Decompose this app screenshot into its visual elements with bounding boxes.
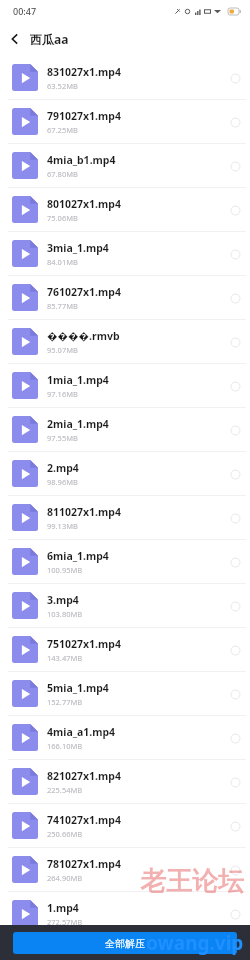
button[interactable]: 3.mp4 [0,584,250,627]
staticText: owang.vip [146,930,244,956]
staticText: 85.77MB [47,301,78,311]
staticText: 801027x1.mp4 [47,197,121,211]
staticText: 老王论坛 [140,865,244,898]
staticText: 103.80MB [47,609,83,619]
staticText: 97.55MB [47,433,78,443]
staticText: 2.mp4 [47,461,79,475]
button[interactable]: Select file [222,417,248,443]
button[interactable]: 781027x1.mp4 [0,848,250,891]
button[interactable]: Select file [222,769,248,795]
button[interactable]: 821027x1.mp4 [0,760,250,803]
staticText: 250.66MB [47,829,83,839]
button[interactable]: ����.rmvb [0,320,250,363]
staticText: 166.10MB [47,741,83,751]
staticText: 5mia_1.mp4 [47,681,109,695]
staticText: 西瓜aa [30,31,69,47]
button[interactable]: Back [0,22,30,56]
button[interactable]: Select file [222,637,248,663]
button[interactable]: 全部解压 [13,932,237,954]
button[interactable]: Select file [222,241,248,267]
button[interactable]: Select file [222,593,248,619]
button[interactable]: 6mia_1.mp4 [0,540,250,583]
staticText: 761027x1.mp4 [47,285,121,299]
staticText: 1.mp4 [47,901,79,915]
button[interactable]: Select file [222,109,248,135]
button[interactable]: 1mia_1.mp4 [0,364,250,407]
staticText: 75.06MB [47,213,78,223]
staticText: 6mia_1.mp4 [47,549,109,563]
button[interactable]: Select file [222,725,248,751]
button[interactable]: 4mia_b1.mp4 [0,144,250,187]
staticText: 3mia_1.mp4 [47,241,109,255]
staticText: 84.01MB [47,257,78,267]
staticText: 67.80MB [47,169,78,179]
staticText: 98.96MB [47,477,78,487]
button[interactable]: 761027x1.mp4 [0,276,250,319]
staticText: 00:47 [13,5,37,17]
button[interactable]: Select file [222,65,248,91]
button[interactable]: 4mia_a1.mp4 [0,716,250,759]
staticText: 97.16MB [47,389,78,399]
staticText: 143.47MB [47,653,83,663]
staticText: 2mia_1.mp4 [47,417,109,431]
staticText: 264.90MB [47,873,83,883]
button[interactable]: 2mia_1.mp4 [0,408,250,451]
staticText: 272.57MB [47,917,83,927]
staticText: 全部解压 [105,937,145,950]
button[interactable]: Select file [222,285,248,311]
staticText: 831027x1.mp4 [47,65,121,79]
button[interactable]: Select file [222,901,248,927]
staticText: 63.52MB [47,81,78,91]
button[interactable]: 791027x1.mp4 [0,100,250,143]
staticText: 781027x1.mp4 [47,857,121,871]
staticText: 152.77MB [47,697,83,707]
button[interactable]: 2.mp4 [0,452,250,495]
staticText: 741027x1.mp4 [47,813,121,827]
button[interactable]: 1.mp4 [0,892,250,935]
button[interactable]: 3mia_1.mp4 [0,232,250,275]
staticText: 95.07MB [47,345,78,355]
staticText: 3.mp4 [47,593,79,607]
button[interactable]: Select file [222,373,248,399]
staticText: 1mia_1.mp4 [47,373,109,387]
staticText: 225.54MB [47,785,83,795]
button[interactable]: Select file [222,857,248,883]
button[interactable]: 801027x1.mp4 [0,188,250,231]
staticText: 751027x1.mp4 [47,637,121,651]
staticText: 811027x1.mp4 [47,505,121,519]
button[interactable]: 741027x1.mp4 [0,804,250,847]
staticText: 100.95MB [47,565,83,575]
staticText: 4mia_b1.mp4 [47,153,116,167]
button[interactable]: Select file [222,197,248,223]
button[interactable]: Select file [222,681,248,707]
button[interactable]: Select file [222,153,248,179]
button[interactable]: Select file [222,813,248,839]
button[interactable]: 5mia_1.mp4 [0,672,250,715]
staticText: 67.25MB [47,125,78,135]
button[interactable]: Select file [222,461,248,487]
button[interactable]: 751027x1.mp4 [0,628,250,671]
staticText: ����.rmvb [47,329,120,343]
staticText: 821027x1.mp4 [47,769,121,783]
button[interactable]: Select file [222,329,248,355]
button[interactable]: 831027x1.mp4 [0,56,250,99]
button[interactable]: Select file [222,549,248,575]
staticText: 99.13MB [47,521,78,531]
button[interactable]: Select file [222,505,248,531]
button[interactable]: 811027x1.mp4 [0,496,250,539]
staticText: 791027x1.mp4 [47,109,121,123]
staticText: 4mia_a1.mp4 [47,725,116,739]
